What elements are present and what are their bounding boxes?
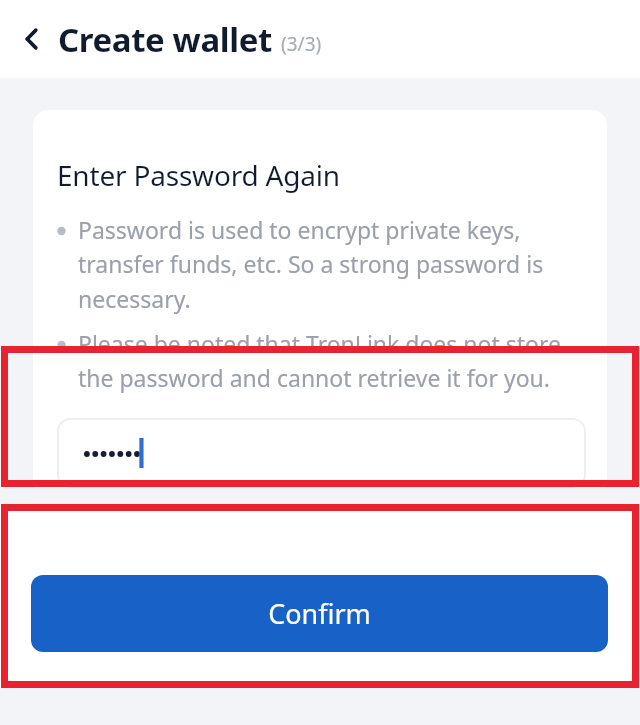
staticText: Please be noted that TronLink does not s… [78,328,581,394]
staticText: Password is used to encrypt private keys… [78,214,581,315]
staticText: Confirm [268,595,371,632]
staticText: Enter Password Again [57,156,340,194]
staticText: (3/3) [281,31,322,57]
button[interactable]: Confirm [31,575,608,652]
button[interactable]: Password field [57,418,586,488]
staticText: Create wallet [58,17,272,62]
button[interactable]: Back [10,17,54,61]
